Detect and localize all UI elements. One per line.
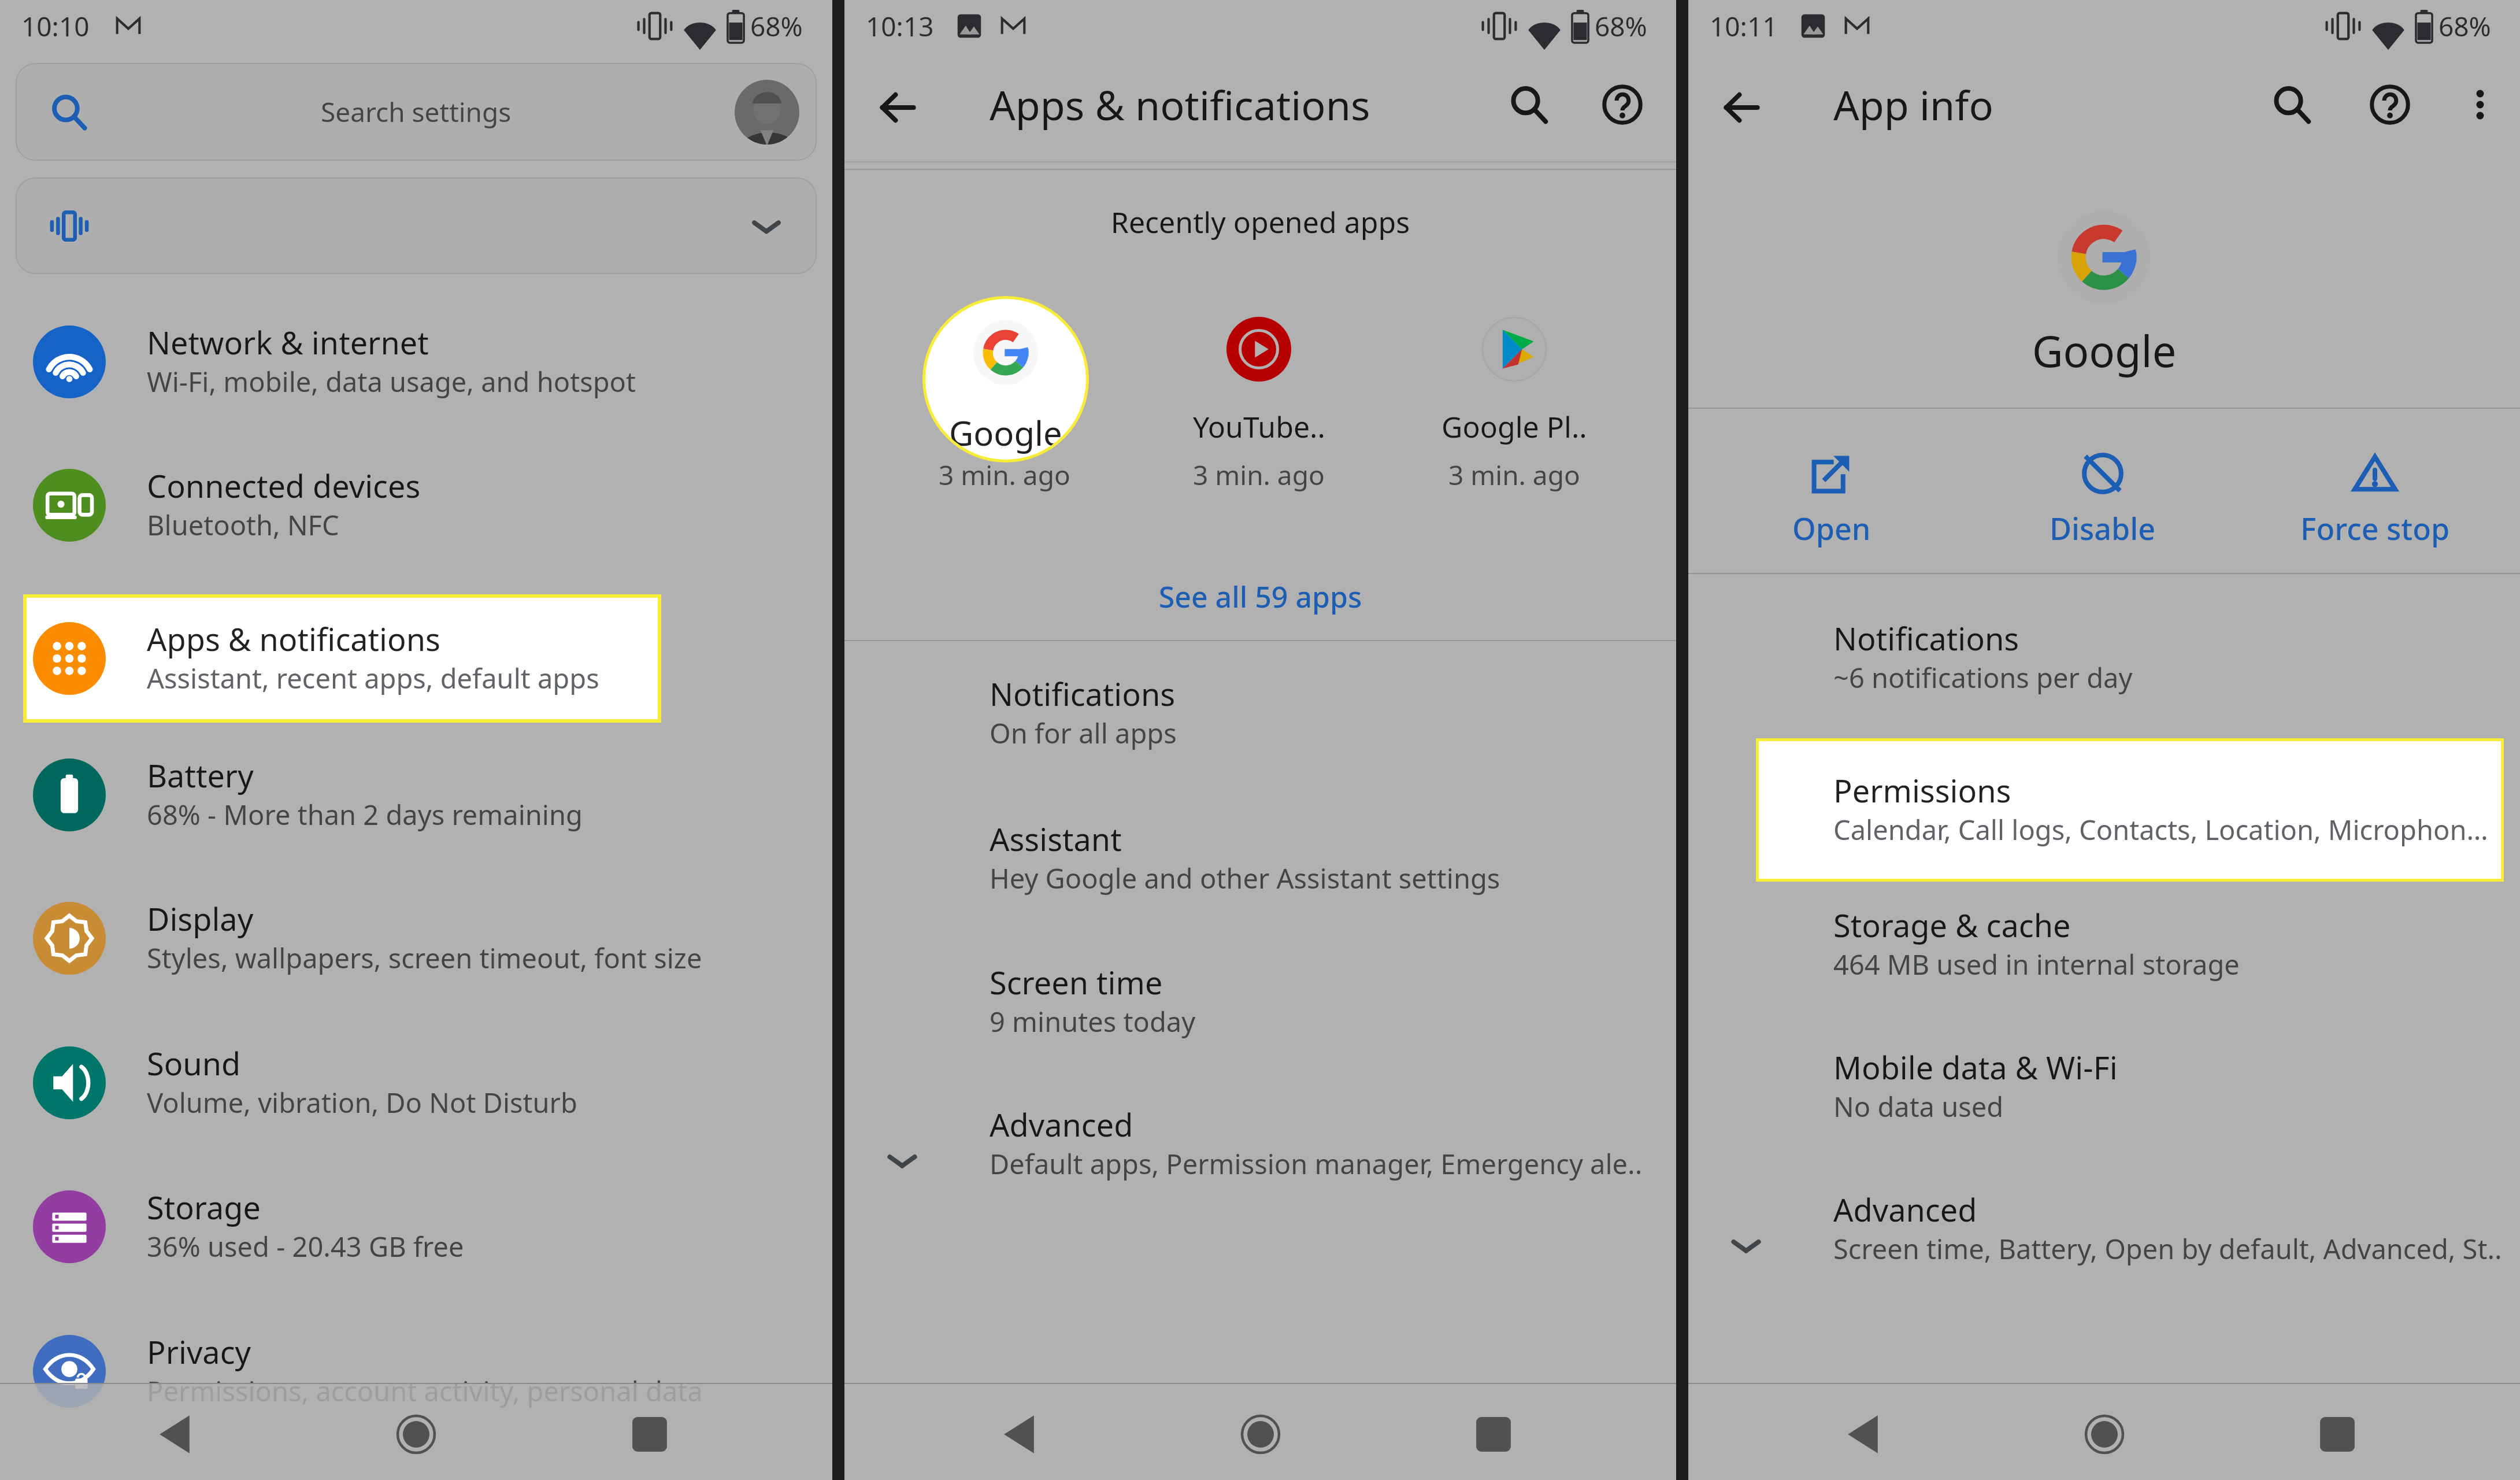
button[interactable]: Home <box>1241 1415 1280 1454</box>
staticText: 36% used - 20.43 GB free <box>147 1228 464 1265</box>
staticText: Notifications <box>1833 617 2019 660</box>
staticText: Apps & notifications <box>147 609 440 652</box>
staticText: Recently opened apps <box>844 202 1676 242</box>
staticText: Apps & notifications <box>147 617 440 660</box>
button[interactable]: Connected devices <box>0 434 832 577</box>
button[interactable]: Back <box>880 90 915 125</box>
staticText: Default apps, Permission manager, Emerge… <box>990 1145 1643 1182</box>
button[interactable]: YouTube.. <box>1143 317 1374 493</box>
button[interactable]: Disable <box>1987 428 2218 561</box>
button[interactable]: More options <box>2460 85 2500 124</box>
staticText: Hey Google and other Assistant settings <box>990 860 1500 897</box>
staticText: Google Pl.. <box>1441 407 1587 446</box>
button[interactable]: Search settings <box>16 63 817 161</box>
button[interactable]: Google Pl.. <box>1399 317 1630 493</box>
staticText: Google <box>949 410 1062 456</box>
staticText: Notifications <box>990 672 1176 715</box>
button[interactable]: Permissions <box>1688 732 2520 875</box>
staticText: Screen time <box>990 961 1163 1004</box>
button[interactable]: Google <box>889 317 1120 493</box>
staticText: Advanced <box>990 1103 1133 1146</box>
staticText: Calendar, Call logs, Contacts, Location,… <box>1833 811 2488 848</box>
button[interactable]: Advanced <box>1688 1157 2520 1301</box>
button[interactable]: Search <box>1509 85 1548 124</box>
button[interactable]: Sound <box>0 1011 832 1155</box>
button[interactable]: Force stop <box>2259 428 2491 561</box>
button[interactable]: Screen time <box>844 930 1676 1074</box>
button[interactable]: Mobile data & Wi-Fi <box>1688 1015 2520 1159</box>
button[interactable]: Back <box>1843 1415 1882 1454</box>
button[interactable]: Google <box>925 299 1086 460</box>
button[interactable]: Battery <box>0 723 832 867</box>
button[interactable]: Help <box>2370 85 2410 124</box>
button[interactable]: See all 59 apps <box>844 577 1676 616</box>
staticText: 3 min. ago <box>1448 457 1580 493</box>
button[interactable]: Network & internet <box>0 290 832 434</box>
staticText: Assistant <box>990 817 1122 860</box>
staticText: No data used <box>1833 1088 2004 1125</box>
staticText: Mobile data & Wi-Fi <box>1833 1046 2118 1089</box>
staticText: Storage & cache <box>1833 904 2071 946</box>
staticText: Sound <box>147 1042 241 1085</box>
staticText: Permissions, account activity, personal … <box>147 1372 703 1409</box>
button[interactable]: Help <box>1603 85 1642 124</box>
button[interactable]: Recent apps <box>1474 1415 1513 1454</box>
staticText: Calendar, Call logs, Contacts, Location,… <box>1833 805 2488 842</box>
staticText: Google <box>956 407 1054 446</box>
button[interactable]: Recent apps <box>2318 1415 2357 1454</box>
staticText: Advanced <box>1833 1188 1977 1231</box>
button[interactable]: Apps & notifications <box>27 598 658 719</box>
staticText: Battery <box>147 754 254 797</box>
staticText: 68% - More than 2 days remaining <box>147 796 583 833</box>
staticText: Force stop <box>2300 508 2450 549</box>
staticText: 3 min. ago <box>939 457 1070 493</box>
button[interactable]: Back <box>999 1415 1039 1454</box>
button[interactable]: Apps & notifications <box>0 578 832 721</box>
staticText: Open <box>1792 508 1871 549</box>
staticText: YouTube.. <box>1193 407 1325 446</box>
staticText: Search settings <box>321 94 512 130</box>
staticText: Privacy <box>147 1330 251 1373</box>
button[interactable]: Privacy <box>0 1300 832 1443</box>
button[interactable]: Assistant <box>844 787 1676 930</box>
staticText: 68% <box>750 8 803 45</box>
staticText: 10:10 <box>21 8 90 45</box>
button[interactable]: Search <box>2272 85 2311 124</box>
button[interactable]: Home <box>396 1415 436 1454</box>
staticText: Bluetooth, NFC <box>147 506 339 543</box>
staticText: Assistant, recent apps, default apps <box>147 651 599 688</box>
button[interactable]: Notifications <box>844 642 1676 785</box>
staticText: 10:11 <box>1710 8 1778 45</box>
staticText: App info <box>1833 77 1993 132</box>
staticText: Storage <box>147 1186 261 1229</box>
button[interactable]: Back <box>155 1415 194 1454</box>
button[interactable]: Open <box>1716 428 1947 561</box>
button[interactable]: Display <box>0 867 832 1010</box>
staticText: Wi-Fi, mobile, data usage, and hotspot <box>147 363 636 400</box>
button[interactable]: Storage & cache <box>1688 873 2520 1016</box>
button[interactable]: Account <box>735 80 799 145</box>
staticText: ~6 notifications per day <box>1833 659 2133 696</box>
button[interactable]: Back <box>1724 90 1759 125</box>
staticText: Assistant, recent apps, default apps <box>147 660 599 697</box>
staticText: Connected devices <box>147 464 421 507</box>
staticText: 3 min. ago <box>1193 457 1325 493</box>
staticText: Display <box>147 897 254 940</box>
staticText: Permissions <box>1833 769 2011 812</box>
button[interactable]: Notifications <box>1688 586 2520 730</box>
staticText: Styles, wallpapers, screen timeout, font… <box>147 939 702 976</box>
button[interactable]: Advanced <box>844 1072 1676 1216</box>
button[interactable] <box>16 177 817 274</box>
button[interactable]: Permissions <box>1759 741 2501 879</box>
staticText: Google <box>1688 321 2520 380</box>
staticText: 9 minutes today <box>990 1003 1196 1040</box>
button[interactable]: Storage <box>0 1155 832 1298</box>
staticText: 464 MB used in internal storage <box>1833 946 2240 983</box>
staticText: Disable <box>2050 508 2156 549</box>
staticText: Apps & notifications <box>990 77 1370 132</box>
staticText: Volume, vibration, Do Not Disturb <box>147 1084 577 1121</box>
staticText: Network & internet <box>147 321 429 364</box>
staticText: 68% <box>2439 8 2491 45</box>
button[interactable]: Recent apps <box>630 1415 669 1454</box>
button[interactable]: Home <box>2085 1415 2124 1454</box>
